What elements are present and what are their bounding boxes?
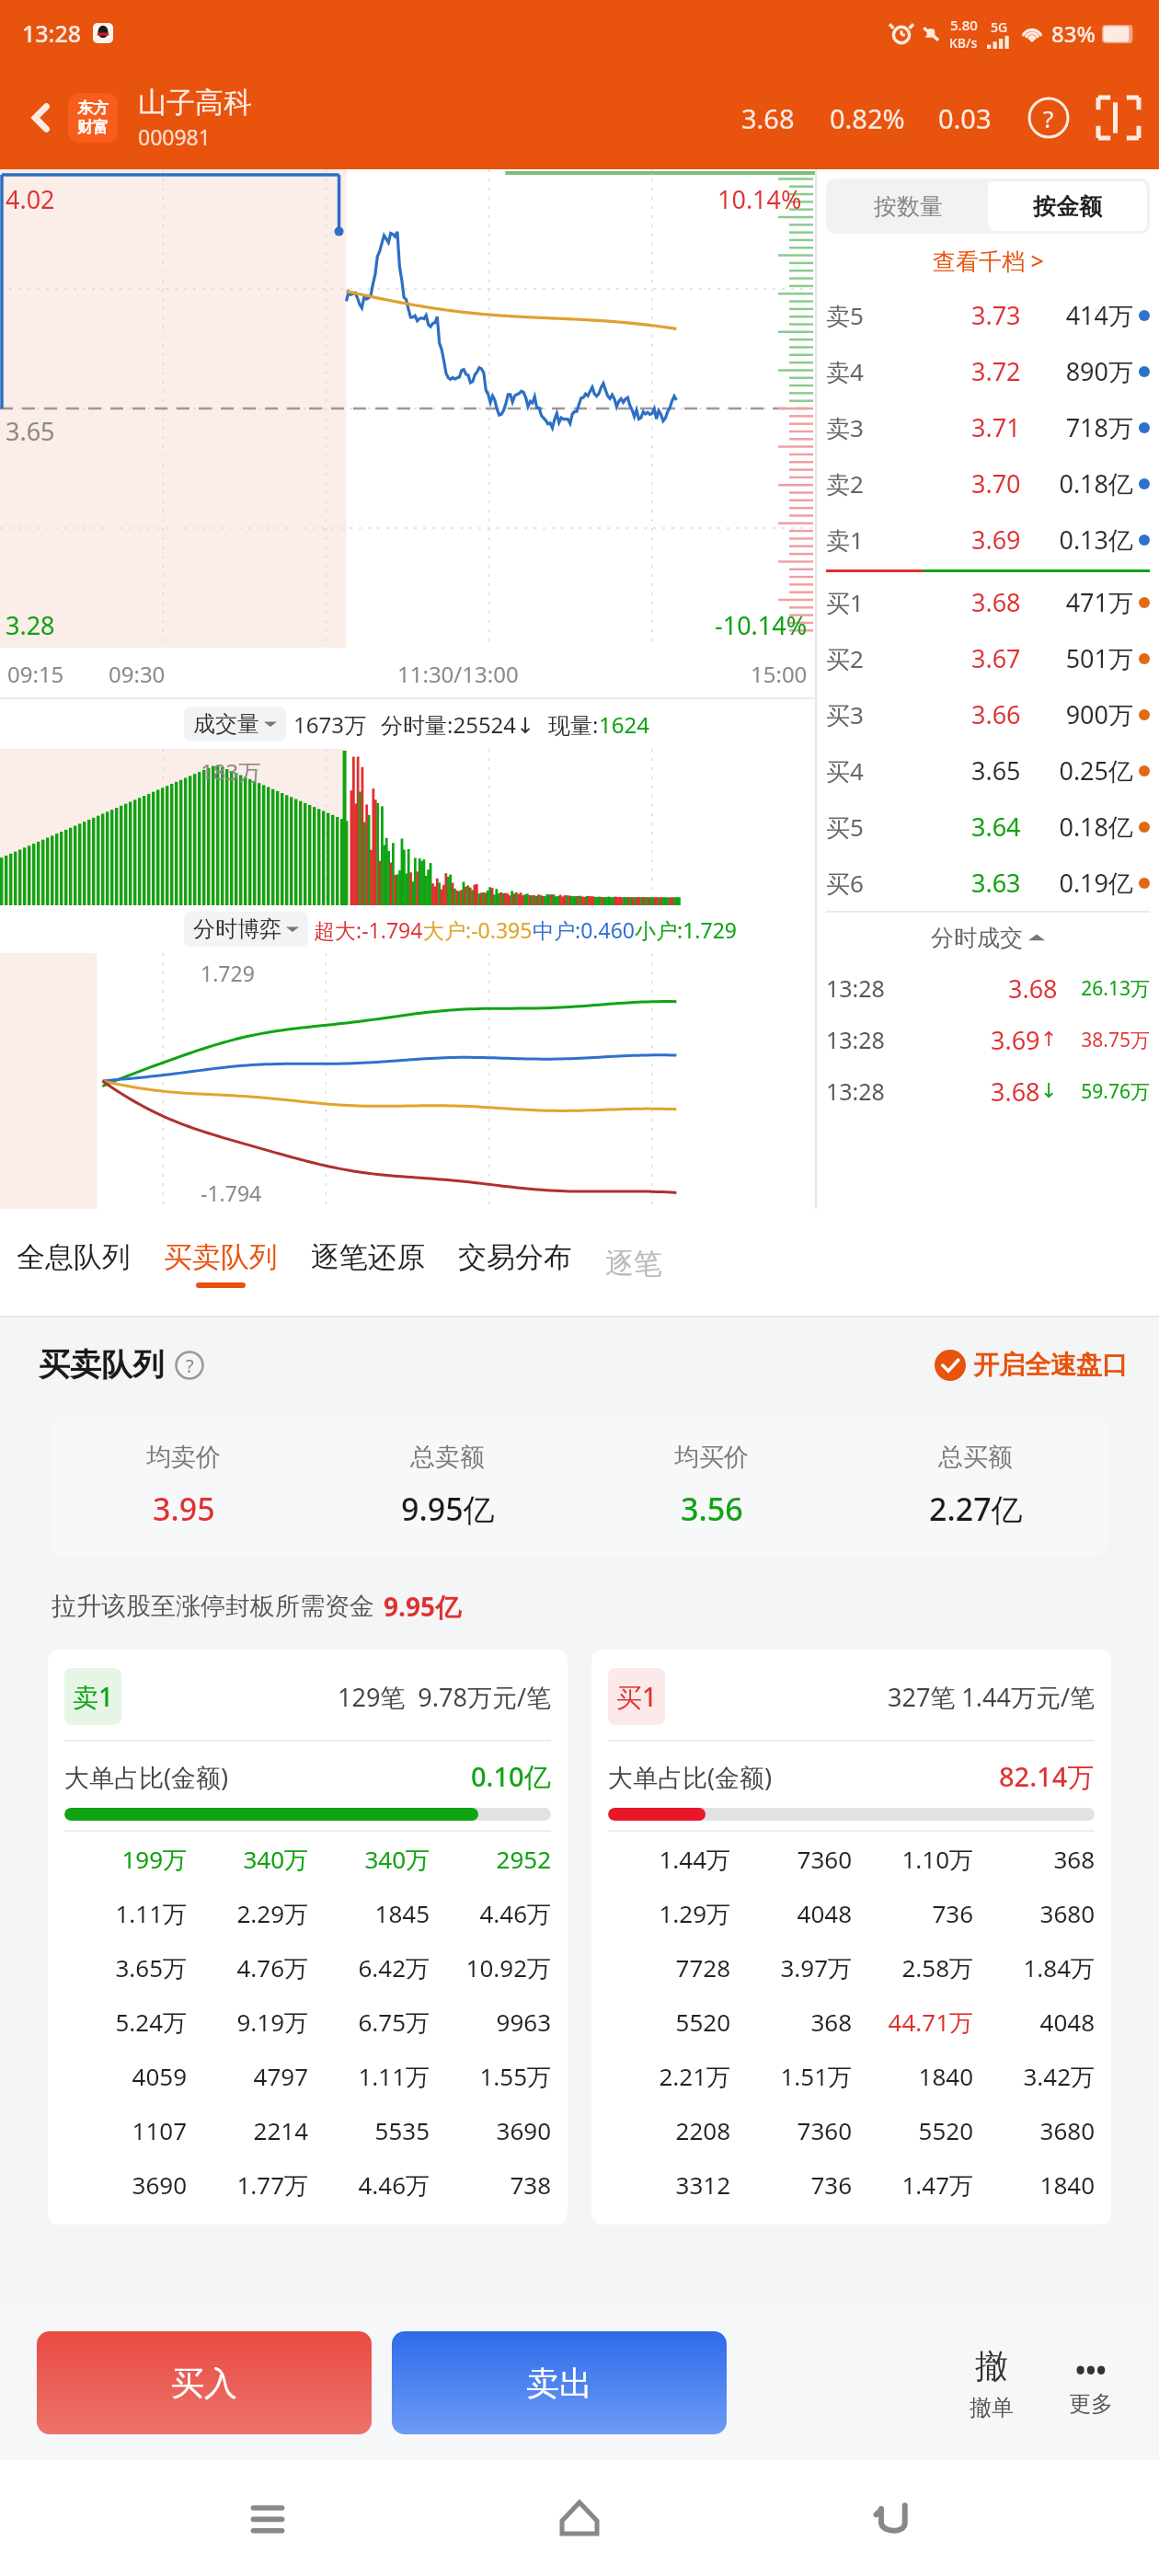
button[interactable]: 卖出 bbox=[392, 2331, 727, 2434]
staticText: 340万 bbox=[308, 1843, 430, 1876]
staticText: 2214 bbox=[187, 2114, 308, 2146]
staticText: 414万 bbox=[1030, 298, 1133, 332]
staticText: 5520 bbox=[852, 2114, 973, 2146]
staticText: 买1 bbox=[826, 586, 864, 619]
staticText: 1107 bbox=[64, 2114, 187, 2146]
staticText: 5.80 bbox=[950, 16, 978, 34]
button[interactable]: 按数量 bbox=[829, 181, 988, 231]
staticText: 183万 bbox=[201, 756, 261, 787]
staticText: 718万 bbox=[1030, 410, 1133, 444]
button[interactable]: Back bbox=[847, 2474, 935, 2562]
staticText: 查看千档 > bbox=[933, 245, 1044, 276]
staticText: 3.95 bbox=[153, 1488, 215, 1530]
staticText: 1840 bbox=[852, 2060, 973, 2092]
staticText: 13:28 bbox=[826, 1024, 885, 1055]
button[interactable]: 买1 bbox=[591, 1650, 1111, 2225]
staticText: 4.76万 bbox=[187, 1951, 308, 1984]
staticText: 10.92万 bbox=[430, 1951, 551, 1984]
staticText: 000981 bbox=[138, 122, 211, 151]
staticText: ? bbox=[1043, 102, 1054, 134]
staticText: 327笔 1.44万元/笔 bbox=[888, 1680, 1095, 1714]
staticText: 82.14万 bbox=[999, 1758, 1095, 1795]
button[interactable]: 买1 bbox=[826, 574, 1150, 630]
staticText: 2952 bbox=[430, 1843, 551, 1875]
button[interactable]: 全息队列 bbox=[17, 1232, 131, 1295]
button[interactable]: 卖3 bbox=[826, 399, 1150, 455]
button[interactable]: 卖1 bbox=[826, 512, 1150, 568]
button[interactable]: 撤 bbox=[960, 2345, 1023, 2421]
staticText: 471万 bbox=[1030, 585, 1133, 619]
button[interactable]: 买卖队列 bbox=[164, 1232, 278, 1295]
staticText: -10.14% bbox=[715, 608, 808, 642]
button[interactable]: 按金额 bbox=[988, 181, 1147, 231]
staticText: 3.28 bbox=[6, 608, 55, 642]
staticText: 1.77万 bbox=[187, 2168, 308, 2202]
button[interactable]: Info bbox=[175, 1351, 204, 1380]
staticText: 买2 bbox=[826, 642, 864, 675]
staticText: 0.82% bbox=[830, 100, 905, 136]
button[interactable]: Scan bbox=[1095, 94, 1142, 142]
staticText: 59.76万 bbox=[1061, 1078, 1150, 1105]
staticText: ↑ bbox=[1040, 1028, 1058, 1052]
button[interactable]: 卖4 bbox=[826, 343, 1150, 399]
button[interactable]: Home bbox=[535, 2474, 624, 2562]
button[interactable]: 买6 bbox=[826, 855, 1150, 911]
staticText: 0.10亿 bbox=[471, 1758, 551, 1795]
staticText: 1.29万 bbox=[608, 1897, 730, 1930]
button[interactable]: ••• bbox=[1060, 2348, 1122, 2418]
staticText: 成交量 bbox=[193, 710, 259, 738]
staticText: 开启全速盘口 bbox=[973, 1349, 1128, 1381]
staticText: 3.70 bbox=[971, 466, 1021, 500]
button[interactable]: 成交量 bbox=[184, 707, 286, 742]
staticText: 368 bbox=[730, 2006, 852, 2038]
button[interactable]: 开启全速盘口 bbox=[935, 1349, 1128, 1381]
button[interactable]: 买3 bbox=[826, 686, 1150, 742]
button[interactable]: 交易分布 bbox=[458, 1232, 572, 1295]
staticText: 3.69 bbox=[971, 523, 1021, 557]
staticText: 340万 bbox=[187, 1843, 308, 1876]
staticText: 中户:0.460 bbox=[533, 915, 635, 944]
staticText: 09:15 bbox=[7, 659, 64, 689]
staticText: 736 bbox=[852, 1897, 973, 1929]
staticText: 撤单 bbox=[970, 2394, 1014, 2421]
button[interactable]: 买2 bbox=[826, 630, 1150, 686]
button[interactable]: 卖5 bbox=[826, 287, 1150, 343]
staticText: 大单占比(金额) bbox=[608, 1760, 773, 1794]
button[interactable]: 13:28 bbox=[826, 1065, 1150, 1117]
staticText: 1.51万 bbox=[730, 2060, 852, 2093]
button[interactable]: East Money bbox=[68, 93, 118, 143]
button[interactable]: 买5 bbox=[826, 799, 1150, 855]
staticText: 501万 bbox=[1030, 641, 1133, 675]
staticText: 2.27亿 bbox=[929, 1488, 1023, 1530]
button[interactable]: 13:28 bbox=[826, 1014, 1150, 1065]
staticText: 更多 bbox=[1069, 2390, 1113, 2418]
staticText: 0.03 bbox=[938, 100, 992, 136]
button[interactable]: 买入 bbox=[37, 2331, 372, 2434]
button[interactable]: Help bbox=[1025, 94, 1073, 142]
button[interactable]: Recents bbox=[224, 2474, 312, 2562]
button[interactable]: 卖2 bbox=[826, 455, 1150, 512]
staticText: 2.29万 bbox=[187, 1897, 308, 1930]
button[interactable]: 13:28 bbox=[826, 962, 1150, 1014]
staticText: 大户:-0.395 bbox=[423, 915, 533, 944]
button[interactable]: Back bbox=[15, 91, 68, 144]
button[interactable]: 买4 bbox=[826, 742, 1150, 799]
staticText: 4048 bbox=[730, 1897, 852, 1929]
button[interactable]: 查看千档 > bbox=[826, 234, 1150, 287]
staticText: 山子高科 bbox=[138, 85, 252, 121]
staticText: 3.65 bbox=[971, 753, 1021, 788]
staticText: 卖2 bbox=[826, 467, 864, 500]
staticText: 26.13万 bbox=[1061, 975, 1150, 1002]
button[interactable]: 逐笔还原 bbox=[311, 1232, 425, 1295]
staticText: 3680 bbox=[973, 1897, 1095, 1929]
button[interactable]: 卖1 bbox=[48, 1650, 568, 2225]
button[interactable]: 分时博弈 bbox=[184, 912, 308, 947]
staticText: 卖3 bbox=[826, 411, 864, 444]
button[interactable]: 分时成交 bbox=[826, 913, 1150, 962]
staticText: 9.95亿 bbox=[401, 1488, 495, 1530]
staticText: 5.24万 bbox=[64, 2006, 187, 2039]
staticText: 3.68 bbox=[991, 1075, 1040, 1109]
staticText: 4.46万 bbox=[308, 2168, 430, 2202]
staticText: 2.58万 bbox=[852, 1951, 973, 1984]
staticText: 4059 bbox=[64, 2060, 187, 2092]
